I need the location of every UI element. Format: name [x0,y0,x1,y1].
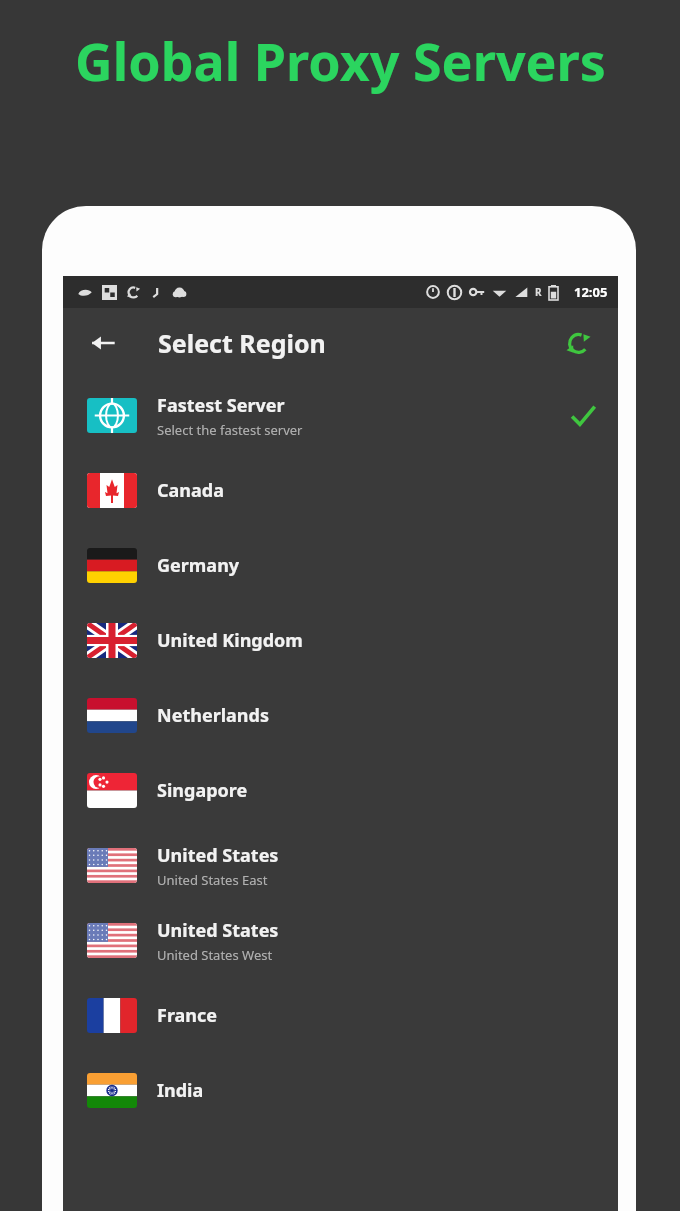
button[interactable]: United States [63,828,618,903]
button[interactable]: Back [81,321,125,365]
staticText: United States [157,843,279,868]
staticText: 12:05 [574,283,608,301]
staticText: Netherlands [157,703,269,728]
button[interactable]: India [63,1053,618,1128]
button[interactable]: Refresh [556,321,600,365]
staticText: Global Proxy Servers [75,25,606,96]
button[interactable]: Netherlands [63,678,618,753]
staticText: Select Region [158,326,326,360]
button[interactable]: Germany [63,528,618,603]
staticText: Singapore [157,778,248,803]
staticText: France [157,1003,218,1028]
staticText: India [157,1078,204,1103]
staticText: Germany [157,553,240,578]
staticText: Canada [157,478,224,503]
button[interactable]: United Kingdom [63,603,618,678]
button[interactable]: United States [63,903,618,978]
button[interactable]: Singapore [63,753,618,828]
button[interactable]: Fastest Server [63,378,618,453]
staticText: Fastest Server [157,393,285,418]
staticText: United States [157,918,279,943]
staticText: Select the fastest server [157,421,303,439]
button[interactable]: Canada [63,453,618,528]
staticText: United Kingdom [157,628,303,653]
staticText: United States West [157,946,273,964]
button[interactable]: France [63,978,618,1053]
staticText: R [535,285,542,299]
staticText: United States East [157,871,268,889]
